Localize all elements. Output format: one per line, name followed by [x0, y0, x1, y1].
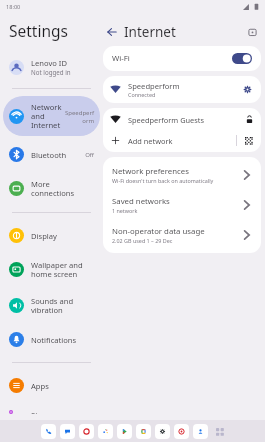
staticText: More connections — [31, 179, 94, 198]
button[interactable]: Target app — [174, 424, 189, 439]
button[interactable]: Speedperform — [103, 76, 261, 103]
button[interactable]: Network preferences — [103, 160, 261, 190]
button[interactable]: Add network — [103, 130, 261, 152]
button[interactable]: Notifications — [3, 326, 100, 353]
staticText: Speedperform — [128, 81, 180, 91]
button[interactable]: Apps — [3, 372, 100, 399]
staticText: Speedperform — [64, 109, 94, 124]
button[interactable]: Network settings — [241, 83, 254, 96]
staticText: Wi-Fi — [112, 53, 130, 64]
staticText: Settings — [9, 20, 68, 41]
button[interactable]: Sounds and vibration — [3, 290, 100, 321]
button[interactable]: Help — [243, 23, 261, 41]
button[interactable]: Wi-Fi — [103, 46, 261, 71]
button[interactable]: Scan QR code — [243, 135, 254, 146]
button[interactable]: Storage — [3, 404, 100, 420]
button[interactable]: Bluetooth — [3, 141, 100, 168]
staticText: Not logged in — [31, 68, 71, 76]
button[interactable]: Messages — [60, 424, 75, 439]
staticText: Lenovo ID — [31, 58, 67, 68]
staticText: Apps — [31, 381, 49, 391]
button[interactable]: Phone — [41, 424, 56, 439]
staticText: Notifications — [31, 335, 77, 345]
staticText: Connected — [128, 91, 156, 98]
staticText: Speedperform Guests — [128, 115, 245, 125]
staticText: Wi-Fi doesn't turn back on automatically — [112, 177, 214, 184]
staticText: Wallpaper and home screen — [31, 260, 94, 279]
staticText: Storage — [31, 410, 59, 414]
button[interactable]: Non-operator data usage — [103, 220, 261, 250]
button[interactable]: All apps — [212, 424, 227, 439]
button[interactable]: Contacts — [193, 424, 208, 439]
staticText: Off — [85, 151, 94, 159]
button[interactable]: Lenovo ID — [3, 52, 100, 82]
button[interactable]: Back — [103, 23, 121, 41]
staticText: 18:00 — [6, 3, 21, 11]
button[interactable]: Speedperform Guests — [103, 108, 261, 130]
button[interactable]: More connections — [3, 173, 100, 204]
button[interactable]: Settings — [155, 424, 170, 439]
staticText: 1 network — [112, 207, 138, 214]
button[interactable]: Photos — [136, 424, 151, 439]
staticText: Network preferences — [112, 166, 189, 177]
staticText: Saved networks — [112, 196, 170, 207]
staticText: 2.02 GB used 1 – 29 Dec — [112, 237, 173, 244]
staticText: Internet — [124, 23, 176, 41]
button[interactable]: Display — [3, 222, 100, 249]
button[interactable]: Saved networks — [103, 190, 261, 220]
button[interactable]: Opera — [79, 424, 94, 439]
button[interactable]: Wallpaper and home screen — [3, 254, 100, 285]
button[interactable]: Network and Internet — [3, 96, 100, 136]
staticText: Bluetooth — [31, 150, 67, 160]
button[interactable]: Assistant — [98, 424, 113, 439]
staticText: Display — [31, 231, 57, 241]
staticText: Non-operator data usage — [112, 226, 205, 237]
staticText: Add network — [128, 136, 236, 146]
button[interactable]: Play Store — [117, 424, 132, 439]
staticText: Sounds and vibration — [31, 296, 94, 315]
staticText: Network and Internet — [31, 102, 64, 130]
